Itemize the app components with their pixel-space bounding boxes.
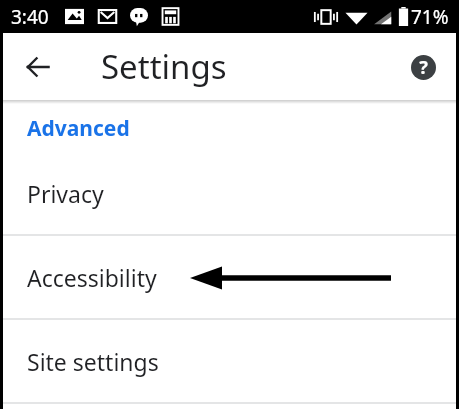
staticText: 3:40: [11, 4, 49, 30]
staticText: ?: [419, 55, 428, 80]
button[interactable]: Help: [403, 47, 443, 87]
button[interactable]: Back: [17, 46, 59, 88]
button[interactable]: Site settings: [3, 320, 456, 402]
button[interactable]: Privacy: [3, 152, 456, 234]
button[interactable]: Accessibility: [3, 236, 456, 318]
staticText: Settings: [101, 44, 227, 89]
staticText: Site settings: [27, 346, 159, 377]
staticText: Advanced: [27, 114, 130, 143]
staticText: Accessibility: [27, 262, 157, 293]
staticText: Privacy: [27, 178, 104, 209]
staticText: 71%: [411, 4, 449, 30]
